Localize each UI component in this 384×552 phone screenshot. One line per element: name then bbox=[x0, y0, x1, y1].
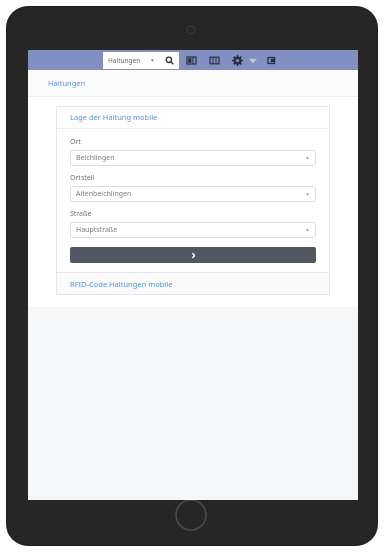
staticText: Haltungen bbox=[108, 56, 150, 65]
button[interactable]: Suchen bbox=[160, 52, 179, 69]
button[interactable]: Karte bbox=[208, 54, 221, 67]
button[interactable]: Hauptstraße bbox=[70, 222, 316, 238]
staticText: Ort bbox=[70, 137, 81, 147]
button[interactable]: Haltungen bbox=[103, 52, 160, 69]
button[interactable]: Abmelden bbox=[266, 54, 279, 67]
staticText: Straße bbox=[70, 209, 92, 219]
staticText: Beichlingen bbox=[76, 153, 305, 163]
staticText: Lage der Haltung mobile bbox=[70, 112, 158, 122]
staticText: Altenbeichlingen bbox=[76, 189, 305, 199]
button[interactable]: Weiter bbox=[70, 247, 316, 263]
button[interactable]: Haltungen bbox=[28, 70, 358, 96]
staticText: Hauptstraße bbox=[76, 225, 305, 235]
button[interactable]: Tabellen bbox=[185, 54, 198, 67]
staticText: Ortsteil bbox=[70, 173, 95, 183]
button[interactable]: RFID-Code Haltungen mobile bbox=[56, 273, 330, 295]
button[interactable]: Altenbeichlingen bbox=[70, 186, 316, 202]
staticText: RFID-Code Haltungen mobile bbox=[70, 279, 173, 289]
staticText: Haltungen bbox=[48, 78, 86, 88]
button[interactable]: Beichlingen bbox=[70, 150, 316, 166]
button[interactable]: Einstellungen bbox=[231, 54, 244, 67]
